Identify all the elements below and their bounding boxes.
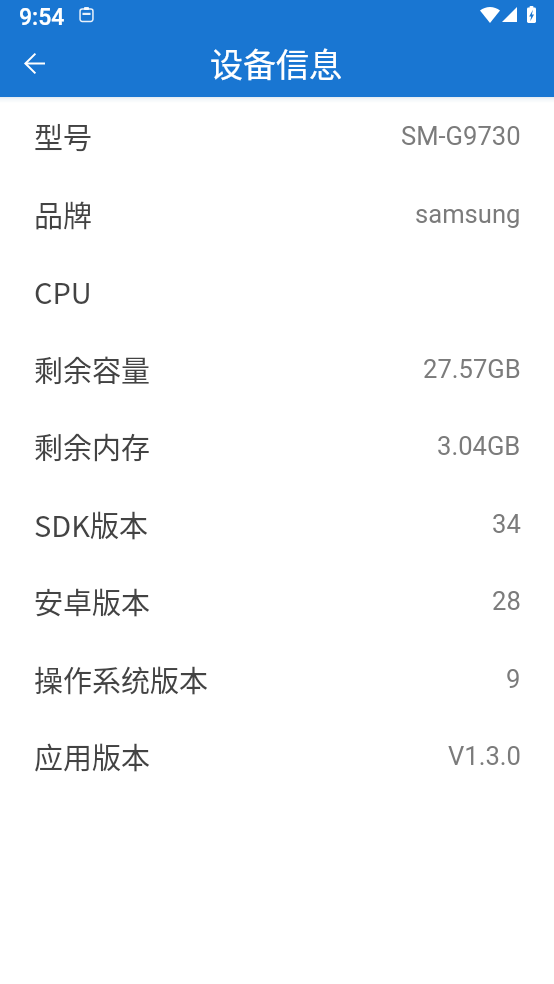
staticText: V1.3.0 (448, 741, 521, 771)
staticText: 3.04GB (437, 431, 521, 461)
staticText: samsung (415, 199, 521, 229)
staticText: 应用版本 (34, 735, 151, 777)
button[interactable]: 应用版本 (0, 717, 554, 794)
button[interactable]: SDK版本 (0, 485, 554, 562)
button[interactable]: 品牌 (0, 175, 554, 252)
staticText: SDK版本 (34, 503, 148, 545)
staticText: 28 (492, 586, 521, 616)
staticText: 型号 (34, 115, 93, 157)
button[interactable]: 安卓版本 (0, 562, 554, 639)
staticText: 剩余容量 (34, 348, 151, 390)
staticText: 安卓版本 (34, 580, 151, 622)
button[interactable]: 剩余容量 (0, 330, 554, 407)
staticText: 34 (492, 509, 521, 539)
button[interactable]: Back (12, 41, 57, 86)
staticText: 操作系统版本 (34, 658, 209, 700)
button[interactable]: CPU (0, 252, 554, 329)
staticText: 9:54 (19, 4, 65, 31)
staticText: 设备信息 (210, 39, 342, 87)
staticText: 27.57GB (423, 354, 521, 384)
button[interactable]: 型号 (0, 97, 554, 174)
staticText: SM-G9730 (401, 121, 521, 151)
button[interactable]: 剩余内存 (0, 407, 554, 484)
staticText: CPU (34, 270, 92, 312)
staticText: 品牌 (34, 193, 93, 235)
button[interactable]: 操作系统版本 (0, 640, 554, 717)
staticText: 剩余内存 (34, 425, 151, 467)
staticText: 9 (506, 664, 521, 694)
